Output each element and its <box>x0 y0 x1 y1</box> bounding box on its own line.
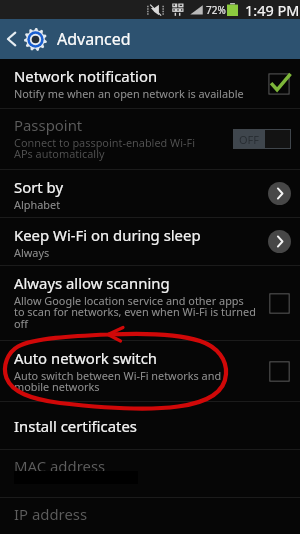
button[interactable]: Sort by <box>0 170 300 217</box>
staticText: Always <box>14 245 50 260</box>
staticText: Network notification <box>14 66 158 86</box>
button[interactable]: IP address <box>0 498 300 534</box>
staticText: MAC address <box>14 456 106 476</box>
other: Back <box>7 31 16 47</box>
staticText: Advanced <box>57 28 131 50</box>
staticText: Always allow scanning <box>14 273 170 293</box>
staticText: Connect to passpoint-enabled Wi-Fi APs a… <box>14 135 195 161</box>
staticText: 1:49 PM <box>245 0 300 19</box>
staticText: Allow Google location service and other … <box>14 293 256 331</box>
button[interactable]: Auto network switch <box>0 341 300 401</box>
button[interactable]: Back <box>0 19 300 59</box>
staticText: Alphabet <box>14 197 61 212</box>
staticText: IP address <box>14 504 88 524</box>
button[interactable]: Install certificates <box>0 402 300 449</box>
button[interactable]: MAC address <box>0 450 300 497</box>
staticText: 72% <box>206 3 226 17</box>
button[interactable]: Passpoint <box>0 109 300 169</box>
staticText: Auto switch between Wi-Fi networks and m… <box>14 368 222 394</box>
button[interactable]: Always allow scanning <box>0 266 300 340</box>
staticText: Sort by <box>14 177 64 197</box>
button[interactable]: Network notification <box>0 59 300 108</box>
staticText: Auto network switch <box>14 348 158 368</box>
staticText: Install certificates <box>14 416 137 436</box>
staticText: OFF <box>239 132 260 147</box>
staticText: Passpoint <box>14 115 83 135</box>
staticText: Notify me when an open network is availa… <box>14 86 244 101</box>
button[interactable]: Keep Wi-Fi on during sleep <box>0 218 300 265</box>
staticText: Keep Wi-Fi on during sleep <box>14 225 201 245</box>
